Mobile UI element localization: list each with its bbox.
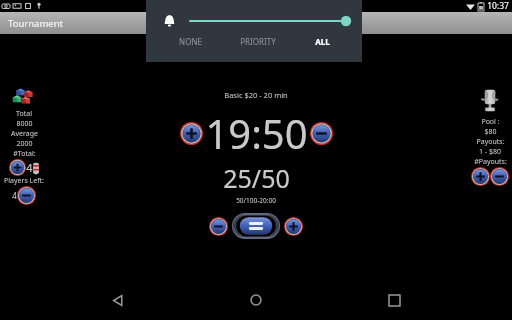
button[interactable]: ALL bbox=[309, 34, 336, 49]
staticText: Total bbox=[16, 109, 32, 119]
staticText: 4 bbox=[26, 160, 33, 175]
staticText: NONE bbox=[179, 36, 202, 47]
staticText: 19:50 bbox=[205, 106, 308, 160]
staticText: 50/100-20:00 bbox=[236, 196, 276, 205]
staticText: 1 - $80 bbox=[479, 147, 501, 157]
button[interactable]: Subtract time bbox=[310, 122, 333, 145]
staticText: 25/50 bbox=[223, 161, 290, 195]
staticText: 4 bbox=[12, 190, 17, 201]
button[interactable]: Next level bbox=[284, 217, 303, 236]
button[interactable]: Decrease payouts bbox=[490, 167, 509, 186]
staticText: 2000 bbox=[16, 139, 33, 149]
button[interactable]: Decrease players left bbox=[17, 186, 36, 205]
button[interactable]: Recents bbox=[374, 280, 414, 320]
button[interactable]: Increase payouts bbox=[471, 167, 490, 186]
button[interactable]: PRIORITY bbox=[234, 34, 282, 49]
staticText: 10:37 bbox=[487, 0, 509, 12]
staticText: ALL bbox=[315, 36, 330, 47]
staticText: Pool : bbox=[481, 117, 500, 127]
button[interactable]: Previous level bbox=[209, 217, 228, 236]
staticText: Basic $20 - 20 min bbox=[224, 90, 288, 100]
button[interactable]: Tournament bbox=[8, 17, 63, 30]
button[interactable]: Increase total bbox=[9, 159, 26, 176]
staticText: #Total: bbox=[13, 149, 36, 159]
button[interactable]: NONE bbox=[173, 34, 208, 49]
button[interactable]: Pause bbox=[231, 213, 281, 239]
button[interactable]: Back bbox=[98, 280, 138, 320]
staticText: Average bbox=[11, 129, 38, 139]
button[interactable]: Home bbox=[236, 280, 276, 320]
staticText: Tournament bbox=[8, 17, 63, 30]
staticText: 8000 bbox=[16, 119, 33, 129]
staticText: Players Left: bbox=[4, 176, 44, 186]
button[interactable]: Ringer mode bbox=[156, 8, 182, 34]
staticText: Payouts: bbox=[476, 137, 505, 147]
button[interactable]: Volume slider bbox=[190, 10, 352, 32]
staticText: #Payouts: bbox=[474, 157, 507, 167]
staticText: $80 bbox=[484, 127, 497, 137]
staticText: PRIORITY bbox=[240, 36, 276, 47]
button[interactable]: Add time bbox=[180, 122, 203, 145]
